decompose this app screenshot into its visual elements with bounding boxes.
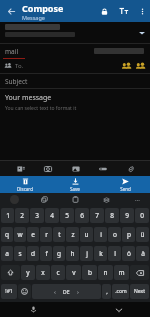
staticText: Subject: [5, 77, 28, 86]
button[interactable]: Text format: [114, 0, 134, 22]
staticText: k: [99, 249, 103, 258]
button[interactable]: Next: [130, 284, 149, 299]
button[interactable]: Backspace: [130, 265, 149, 280]
button[interactable]: 8: [105, 208, 119, 223]
staticText: 7: [95, 211, 99, 220]
button[interactable]: .com: [112, 284, 129, 299]
staticText: ‹: [54, 288, 56, 296]
staticText: o: [113, 230, 117, 239]
button[interactable]: Attach file: [123, 161, 138, 176]
button[interactable]: e: [27, 227, 39, 242]
button[interactable]: Stickers: [40, 195, 49, 204]
button[interactable]: 1: [1, 208, 14, 223]
staticText: m: [118, 268, 125, 277]
button[interactable]: v: [66, 265, 81, 280]
button[interactable]: n: [98, 265, 113, 280]
button[interactable]: mail: [0, 44, 150, 58]
button[interactable]: 4: [45, 208, 59, 223]
button[interactable]: f: [40, 246, 52, 261]
button[interactable]: Contact: [13, 161, 28, 176]
button[interactable]: Contacts: [4, 62, 12, 70]
button[interactable]: Send: [100, 176, 150, 193]
button[interactable]: Gallery: [68, 161, 83, 176]
button[interactable]: !#1: [1, 284, 17, 299]
staticText: ,: [106, 288, 108, 296]
button[interactable]: b: [82, 265, 97, 280]
button[interactable]: Subject: [0, 74, 150, 88]
button[interactable]: Your message: [0, 93, 150, 112]
button[interactable]: 9: [120, 208, 134, 223]
button[interactable]: l: [108, 246, 121, 261]
staticText: 2: [20, 211, 24, 220]
button[interactable]: Settings: [10, 195, 19, 204]
button[interactable]: 2: [15, 208, 29, 223]
button[interactable]: c: [51, 265, 65, 280]
staticText: Send: [120, 186, 131, 192]
button[interactable]: Camera: [40, 161, 55, 176]
staticText: h: [70, 249, 75, 258]
button[interactable]: Discard: [0, 176, 50, 193]
staticText: x: [41, 268, 45, 277]
button[interactable]: Emoji: [18, 284, 31, 299]
staticText: j: [86, 249, 88, 258]
staticText: u: [84, 230, 89, 239]
button[interactable]: s: [14, 246, 26, 261]
button[interactable]: d: [27, 246, 39, 261]
button[interactable]: h: [66, 246, 79, 261]
button[interactable]: p: [122, 227, 135, 242]
button[interactable]: ,: [102, 284, 111, 299]
staticText: e: [31, 230, 35, 239]
button[interactable]: x: [36, 265, 50, 280]
button[interactable]: Expand: [0, 22, 150, 43]
button[interactable]: More: [133, 195, 142, 204]
button[interactable]: Themes: [102, 195, 111, 204]
button[interactable]: Back: [0, 0, 22, 22]
staticText: ···: [135, 196, 140, 204]
button[interactable]: Shift: [1, 265, 20, 280]
staticText: y: [26, 268, 30, 277]
staticText: 4: [50, 211, 54, 220]
button[interactable]: o: [108, 227, 121, 242]
button[interactable]: Voice input: [28, 304, 39, 315]
button[interactable]: ü: [136, 227, 149, 242]
button[interactable]: Add from contacts: [135, 61, 146, 72]
staticText: w: [17, 230, 23, 239]
button[interactable]: Save: [50, 176, 100, 193]
button[interactable]: 5: [60, 208, 74, 223]
button[interactable]: ö: [122, 246, 135, 261]
button[interactable]: Add recipient: [121, 61, 132, 72]
staticText: 8: [110, 211, 114, 220]
button[interactable]: 0: [135, 208, 149, 223]
button[interactable]: m: [114, 265, 129, 280]
staticText: Save: [70, 186, 80, 192]
staticText: n: [103, 268, 108, 277]
button[interactable]: Hide keyboard: [113, 304, 124, 315]
button[interactable]: r: [40, 227, 52, 242]
button[interactable]: 3: [30, 208, 44, 223]
button[interactable]: Encrypt: [94, 0, 114, 22]
staticText: 0: [140, 211, 144, 220]
button[interactable]: 6: [75, 208, 89, 223]
button[interactable]: i: [94, 227, 107, 242]
button[interactable]: 7: [90, 208, 104, 223]
button[interactable]: More options: [134, 0, 150, 22]
button[interactable]: Contacts: [0, 59, 150, 73]
button[interactable]: Clipboard: [71, 195, 80, 204]
button[interactable]: k: [94, 246, 107, 261]
staticText: ä: [141, 249, 145, 258]
button[interactable]: ä: [136, 246, 149, 261]
button[interactable]: Audio: [95, 161, 110, 176]
staticText: .com: [115, 288, 127, 295]
button[interactable]: Expand: [139, 30, 145, 36]
button[interactable]: q: [1, 227, 13, 242]
button[interactable]: Space: [32, 284, 101, 299]
button[interactable]: g: [53, 246, 65, 261]
staticText: 9: [125, 211, 129, 220]
button[interactable]: z: [66, 227, 79, 242]
button[interactable]: a: [1, 246, 13, 261]
button[interactable]: t: [53, 227, 65, 242]
button[interactable]: u: [80, 227, 93, 242]
button[interactable]: w: [14, 227, 26, 242]
button[interactable]: j: [80, 246, 93, 261]
button[interactable]: y: [21, 265, 35, 280]
